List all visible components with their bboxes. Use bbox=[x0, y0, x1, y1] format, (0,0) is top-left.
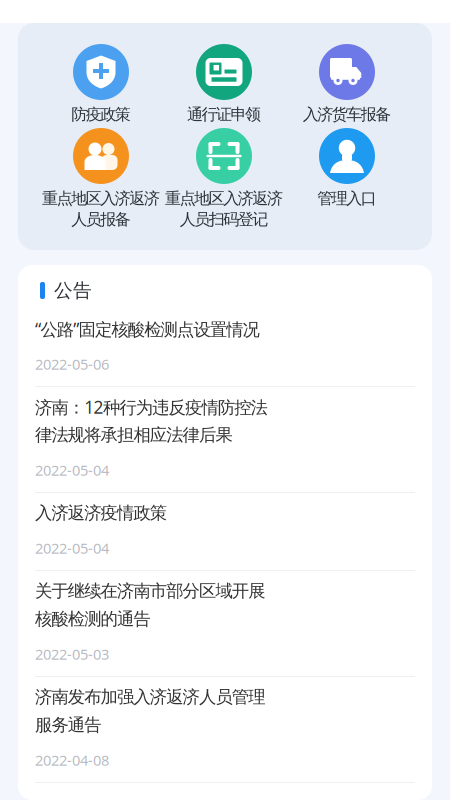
button[interactable]: 防疫政策 bbox=[39, 44, 162, 125]
button[interactable]: 管理入口 bbox=[285, 128, 408, 209]
staticText: 2022-05-04 bbox=[35, 538, 109, 558]
staticText: 入济货车报备 bbox=[303, 105, 391, 124]
button[interactable]: 重点地区入济返济 bbox=[162, 128, 285, 230]
button[interactable]: 关于继续在济南市部分区域开展 bbox=[18, 571, 432, 677]
staticText: 人员报备 bbox=[71, 210, 131, 229]
button[interactable]: 重点地区入济返济 bbox=[39, 128, 162, 230]
button[interactable]: 入济返济疫情政策 bbox=[18, 493, 432, 571]
staticText: 济南发布加强入济返济人员管理 bbox=[35, 686, 265, 708]
button[interactable]: 通行证申领 bbox=[162, 44, 285, 125]
button[interactable]: “公路”固定核酸检测点设置情况 bbox=[18, 309, 432, 387]
staticText: 2022-05-04 bbox=[35, 460, 109, 480]
button[interactable]: 入济货车报备 bbox=[285, 44, 408, 125]
staticText: 核酸检测的通告 bbox=[35, 608, 150, 630]
staticText: 律法规将承担相应法律后果 bbox=[35, 424, 232, 446]
staticText: 入济返济疫情政策 bbox=[35, 502, 167, 524]
staticText: 重点地区入济返济 bbox=[165, 189, 283, 208]
staticText: 通行证申领 bbox=[187, 105, 261, 124]
staticText: 济南：12种行为违反疫情防控法 bbox=[35, 395, 268, 418]
staticText: 公告 bbox=[54, 279, 92, 302]
staticText: 管理入口 bbox=[317, 189, 377, 208]
staticText: 关于继续在济南市部分区域开展 bbox=[35, 580, 265, 602]
staticText: 人员扫码登记 bbox=[180, 210, 268, 229]
staticText: 防疫政策 bbox=[71, 105, 131, 124]
button[interactable]: 济南：12种行为违反疫情防控法 bbox=[18, 387, 432, 493]
staticText: 2022-04-08 bbox=[35, 750, 109, 770]
staticText: 重点地区入济返济 bbox=[42, 189, 160, 208]
staticText: 2022-05-03 bbox=[35, 644, 109, 664]
staticText: 2022-05-06 bbox=[35, 354, 109, 374]
staticText: 服务通告 bbox=[35, 714, 101, 736]
staticText: “公路”固定核酸检测点设置情况 bbox=[35, 317, 260, 340]
button[interactable]: 济南发布加强入济返济人员管理 bbox=[18, 677, 432, 783]
